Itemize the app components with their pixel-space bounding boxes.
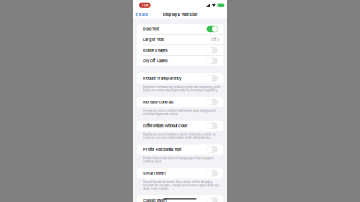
staticText: Bold Text (143, 27, 159, 31)
staticText: Smart Invert (143, 171, 166, 176)
staticText: Smart Invert reverses the colors of the … (143, 180, 219, 190)
button[interactable]: Smart Invert (137, 168, 223, 178)
staticText: Replaces user interface items that rely … (143, 133, 216, 139)
staticText: Display & Text Size (163, 12, 197, 17)
staticText: Increase Contrast (143, 100, 173, 104)
staticText: Reduce Transparency (143, 76, 181, 81)
button[interactable]: Differentiate Without Color (137, 121, 223, 131)
staticText: Increase color contrast between app fore… (143, 109, 216, 116)
button[interactable]: Larger Text (137, 34, 223, 45)
button[interactable]: Classic Invert (137, 195, 223, 202)
button[interactable]: Bold Text (137, 24, 223, 34)
staticText: On/Off Labels (143, 58, 167, 63)
staticText: Prefer Horizontal Text (143, 147, 181, 152)
staticText: Classic Invert (143, 198, 166, 202)
button[interactable]: On/Off Labels (137, 56, 223, 66)
button[interactable]: Back (136, 11, 148, 18)
button[interactable]: Prefer Horizontal Text (137, 144, 223, 155)
staticText: Prefer horizontal text in languages that… (143, 156, 213, 163)
staticText: Differentiate Without Color (143, 123, 188, 128)
staticText: Improve contrast by reducing the transpa… (143, 85, 220, 92)
staticText: Larger Text (143, 37, 164, 42)
button[interactable]: Increase Contrast (137, 97, 223, 107)
button[interactable]: Button Shapes (137, 45, 223, 55)
staticText: 7:04 (141, 3, 148, 7)
staticText: Off (211, 37, 216, 42)
button[interactable]: Reduce Transparency (137, 73, 223, 83)
staticText: Button Shapes (143, 48, 167, 53)
staticText: Back (139, 12, 148, 17)
